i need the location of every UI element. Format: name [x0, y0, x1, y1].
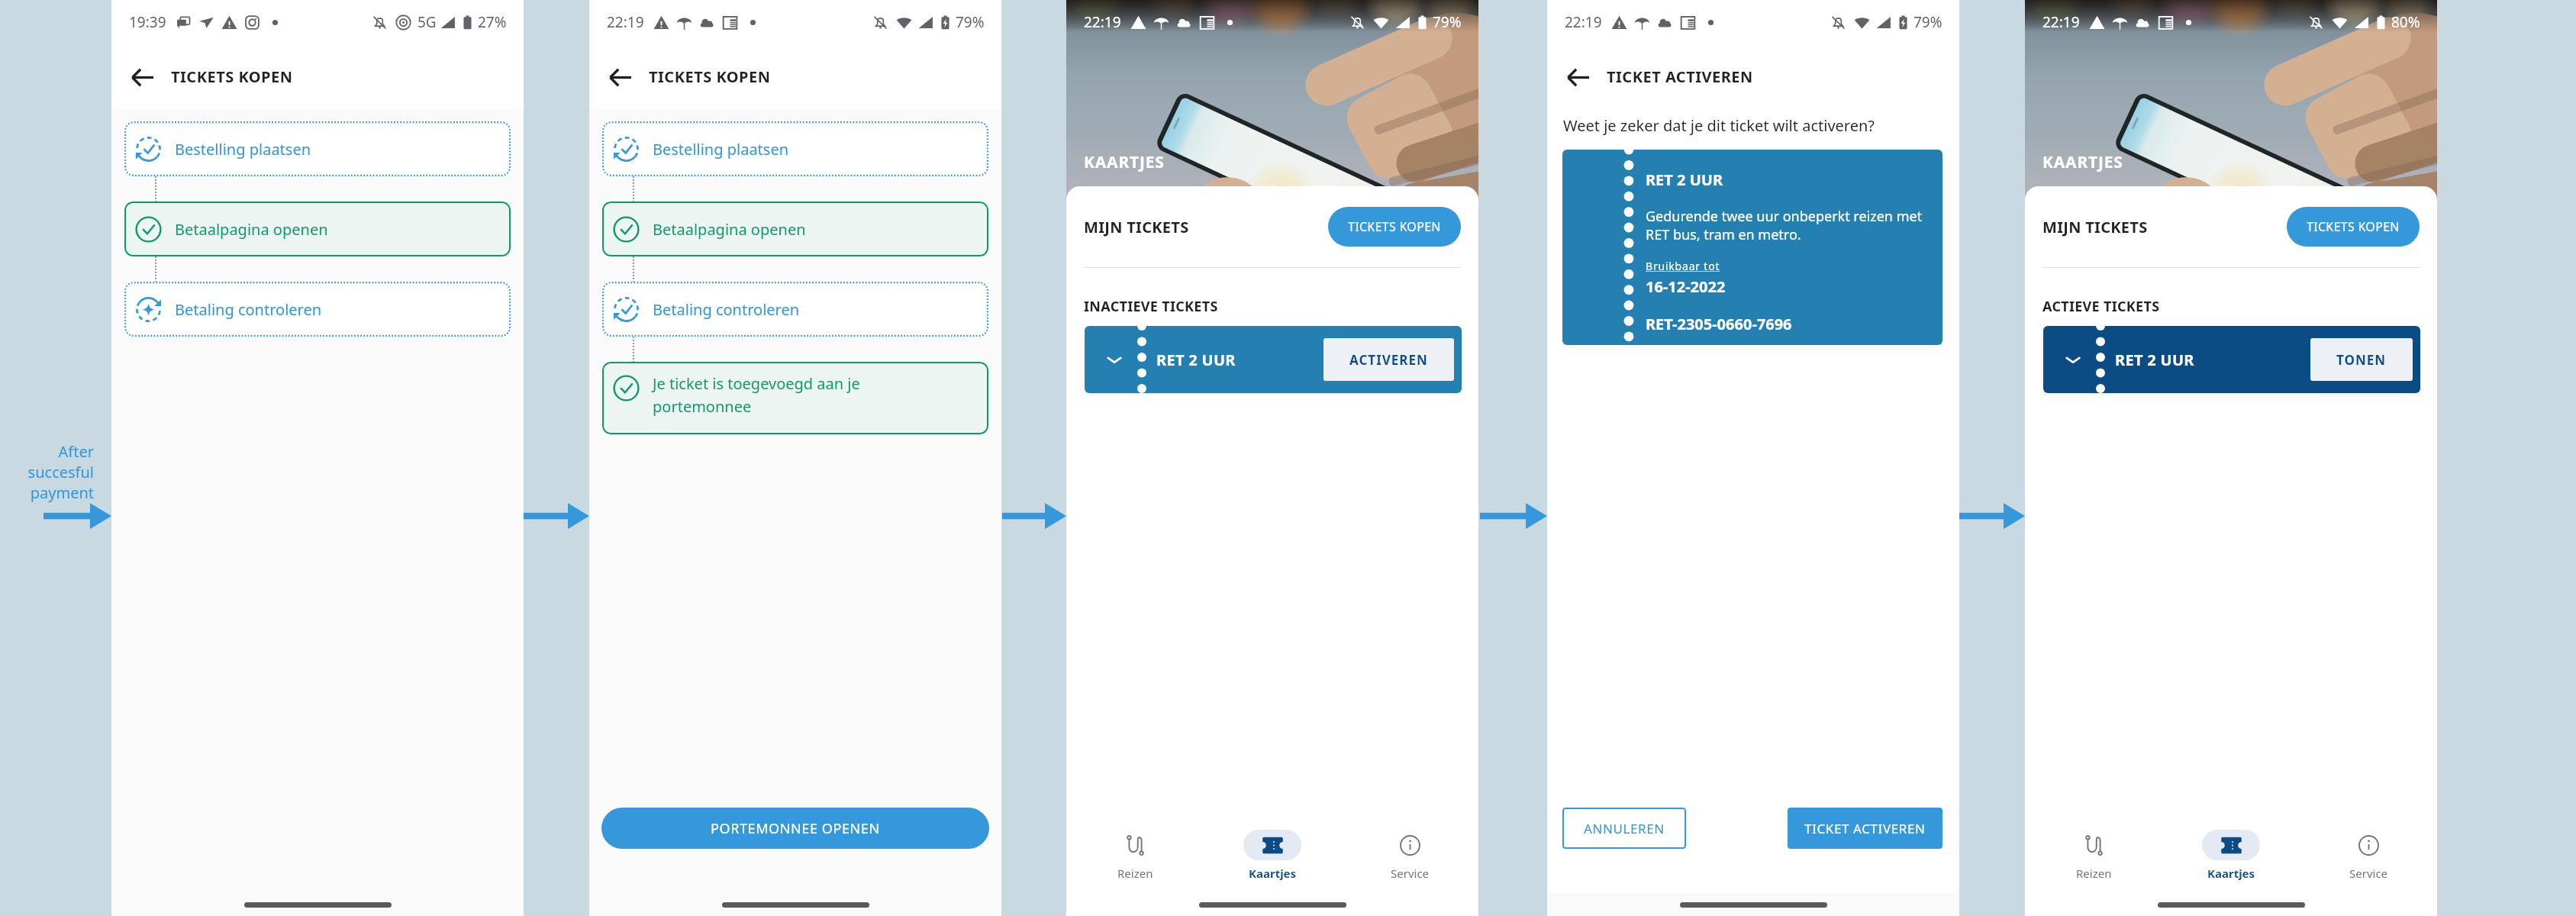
staticText: Weet je zeker dat je dit ticket wilt act…	[1563, 115, 1875, 136]
staticText: RET 2 UUR	[1646, 169, 1723, 190]
staticText: Service	[2349, 866, 2388, 881]
button[interactable]: Expand ticket	[2043, 326, 2420, 393]
staticText: Reizen	[2076, 866, 2112, 881]
staticText: Je ticket is toegevoegd aan je portemonn…	[653, 373, 916, 417]
staticText: TICKETS KOPEN	[2307, 218, 2400, 235]
button[interactable]: Reizen	[2025, 817, 2162, 893]
button[interactable]: Betaling controleren	[124, 282, 511, 337]
button[interactable]: Service	[2300, 817, 2437, 893]
staticText: KAARTJES	[2042, 151, 2123, 173]
staticText: 22:19	[1565, 12, 1602, 32]
button[interactable]: Je ticket is toegevoegd aan je portemonn…	[602, 362, 988, 434]
staticText: TICKETS KOPEN	[1348, 218, 1441, 235]
staticText: RET 2 UUR	[1156, 350, 1236, 370]
button[interactable]: Reizen	[1066, 817, 1204, 893]
staticText: TONEN	[2336, 351, 2387, 369]
staticText: INACTIEVE TICKETS	[1084, 297, 1218, 316]
button[interactable]: Betaalpagina openen	[602, 202, 988, 256]
staticText: Kaartjes	[2207, 866, 2255, 881]
staticText: Betaalpagina openen	[653, 219, 806, 240]
staticText: ACTIVEREN	[1349, 351, 1428, 369]
staticText: Bestelling plaatsen	[175, 139, 311, 160]
other: Expand ticket	[1104, 350, 1124, 369]
button[interactable]: Expand ticket	[1085, 326, 1462, 393]
staticText: 16-12-2022	[1646, 276, 1726, 297]
staticText: Betaling controleren	[175, 299, 322, 320]
staticText: 19:39	[129, 12, 166, 32]
button[interactable]: Kaartjes	[2162, 817, 2300, 893]
button[interactable]: TICKETS KOPEN	[2287, 207, 2420, 247]
button[interactable]: Kaartjes	[1204, 817, 1341, 893]
staticText: TICKET ACTIVEREN	[1804, 820, 1926, 837]
staticText: 79%	[1913, 12, 1942, 32]
button[interactable]: Service	[1341, 817, 1478, 893]
button[interactable]: Bestelling plaatsen	[602, 121, 988, 176]
staticText: 22:19	[607, 12, 644, 32]
button[interactable]: Betaalpagina openen	[124, 202, 511, 256]
button[interactable]: Back	[124, 59, 160, 95]
staticText: TICKETS KOPEN	[649, 66, 771, 87]
staticText: MIJN TICKETS	[1084, 217, 1189, 237]
button[interactable]: ANNULEREN	[1562, 808, 1686, 849]
staticText: Bestelling plaatsen	[653, 139, 789, 160]
button[interactable]: Back	[1559, 59, 1596, 95]
staticText: After succesful payment	[0, 441, 94, 503]
staticText: PORTEMONNEE OPENEN	[711, 819, 880, 838]
staticText: 22:19	[1084, 12, 1121, 32]
staticText: 27%	[478, 12, 507, 32]
button[interactable]: ACTIVEREN	[1323, 338, 1454, 381]
staticText: Reizen	[1117, 866, 1153, 881]
button[interactable]: Betaling controleren	[602, 282, 988, 337]
staticText: TICKETS KOPEN	[171, 66, 293, 87]
staticText: 79%	[1433, 12, 1462, 32]
button[interactable]: Back	[601, 59, 638, 95]
button[interactable]: PORTEMONNEE OPENEN	[601, 808, 989, 849]
staticText: 5G	[418, 12, 437, 32]
button[interactable]: TICKET ACTIVEREN	[1788, 808, 1942, 849]
staticText: Kaartjes	[1249, 866, 1297, 881]
staticText: Bruikbaar tot	[1646, 259, 1720, 273]
staticText: Service	[1391, 866, 1430, 881]
staticText: 80%	[2391, 12, 2420, 32]
staticText: ACTIEVE TICKETS	[2042, 297, 2160, 316]
staticText: ANNULEREN	[1584, 820, 1665, 837]
staticText: 22:19	[2042, 12, 2080, 32]
other: Expand ticket	[2063, 350, 2083, 369]
staticText: Betaling controleren	[653, 299, 800, 320]
staticText: Betaalpagina openen	[175, 219, 328, 240]
button[interactable]: TICKETS KOPEN	[1328, 207, 1461, 247]
staticText: RET 2 UUR	[2115, 350, 2194, 370]
button[interactable]: Bestelling plaatsen	[124, 121, 511, 176]
button[interactable]: TONEN	[2310, 338, 2413, 381]
staticText: Gedurende twee uur onbeperkt reizen met …	[1646, 207, 1929, 244]
staticText: MIJN TICKETS	[2042, 217, 2148, 237]
staticText: TICKET ACTIVEREN	[1607, 66, 1753, 87]
staticText: 79%	[956, 12, 985, 32]
staticText: RET-2305-0660-7696	[1646, 314, 1792, 334]
staticText: KAARTJES	[1084, 151, 1165, 173]
